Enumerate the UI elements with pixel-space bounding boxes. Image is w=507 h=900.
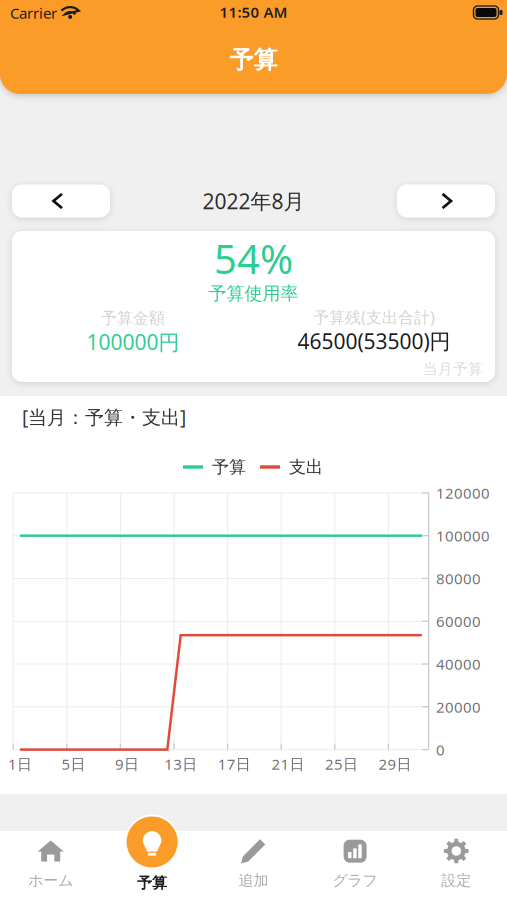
staticText: 追加 bbox=[238, 871, 268, 890]
staticText: 100000 bbox=[436, 525, 490, 546]
staticText: 予算残(支出合計) bbox=[313, 306, 435, 328]
staticText: 予算金額 bbox=[101, 308, 165, 328]
staticText: 120000 bbox=[436, 483, 490, 503]
staticText: グラフ bbox=[332, 871, 377, 890]
staticText: 54% bbox=[214, 231, 293, 286]
staticText: [当月：予算・支出] bbox=[22, 404, 186, 430]
button[interactable]: 追加 bbox=[203, 831, 304, 900]
staticText: 当月予算 bbox=[423, 360, 483, 378]
staticText: 予算 bbox=[137, 874, 167, 892]
staticText: ホーム bbox=[28, 871, 73, 890]
staticText: 80000 bbox=[436, 568, 481, 589]
staticText: 60000 bbox=[436, 611, 481, 631]
staticText: Carrier bbox=[10, 3, 57, 23]
staticText: 支出 bbox=[289, 456, 323, 478]
staticText: 9日 bbox=[115, 754, 139, 774]
staticText: 0 bbox=[436, 739, 445, 760]
staticText: 1日 bbox=[8, 754, 32, 774]
staticText: 予算使用率 bbox=[208, 282, 298, 305]
staticText: 17日 bbox=[218, 754, 251, 774]
staticText: 予算 bbox=[212, 456, 246, 478]
button[interactable]: 前の月 bbox=[12, 184, 110, 217]
staticText: 25日 bbox=[325, 754, 358, 774]
button[interactable]: 予算 bbox=[101, 831, 203, 900]
staticText: 2022年8月 bbox=[202, 187, 304, 215]
staticText: 13日 bbox=[164, 754, 197, 774]
staticText: 20000 bbox=[436, 697, 481, 717]
staticText: 11:50 AM bbox=[219, 2, 287, 22]
staticText: 46500(53500)円 bbox=[297, 327, 450, 355]
staticText: 40000 bbox=[436, 654, 481, 674]
staticText: 予算 bbox=[229, 45, 277, 75]
staticText: 100000円 bbox=[86, 327, 179, 356]
staticText: 21日 bbox=[271, 754, 304, 774]
button[interactable]: 次の月 bbox=[397, 184, 495, 217]
button[interactable]: 設定 bbox=[406, 831, 507, 900]
staticText: 29日 bbox=[379, 754, 412, 774]
staticText: 設定 bbox=[441, 871, 471, 890]
button[interactable]: グラフ bbox=[304, 831, 406, 900]
button[interactable]: ホーム bbox=[0, 831, 101, 900]
staticText: 5日 bbox=[61, 754, 85, 774]
